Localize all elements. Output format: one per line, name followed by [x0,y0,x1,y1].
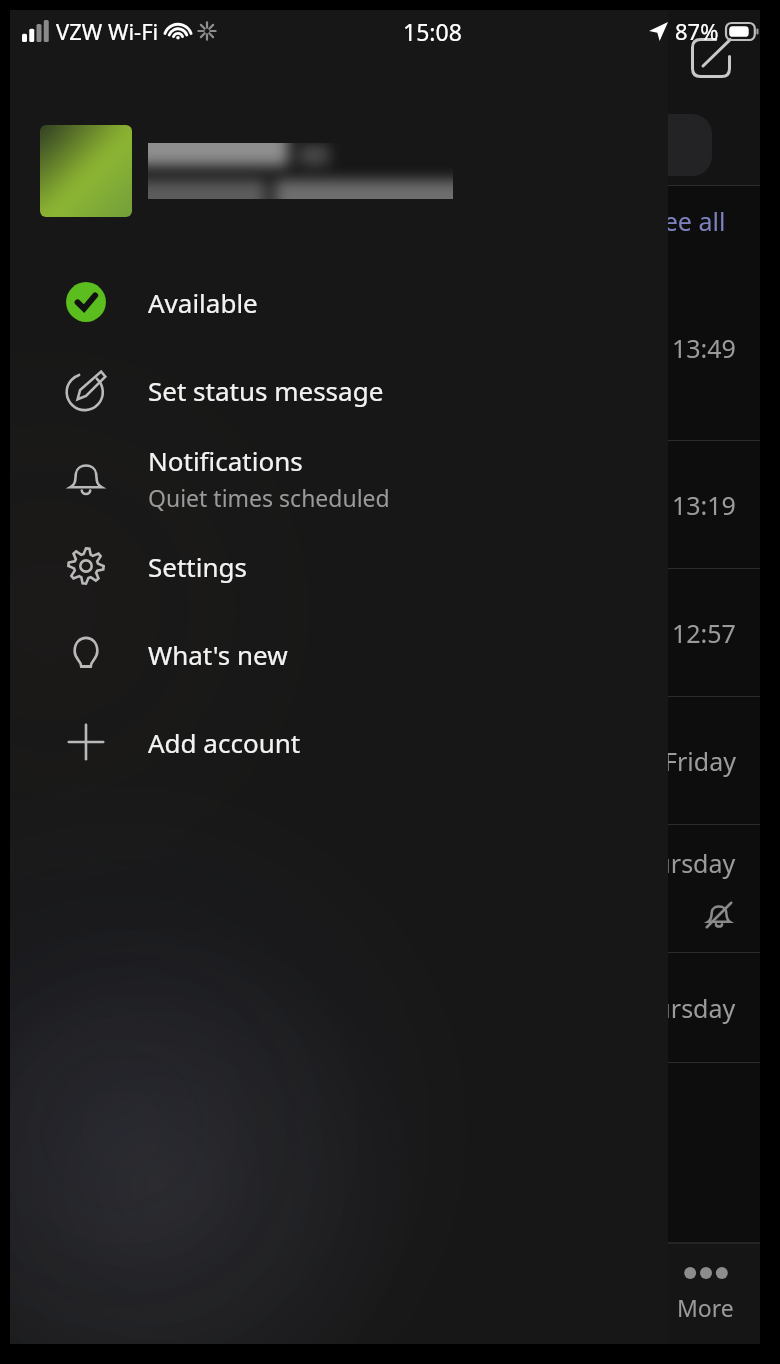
button[interactable]: Set status message [10,346,668,434]
staticText: More [677,1292,734,1323]
button[interactable]: Notifications [10,434,668,522]
staticText: Friday [664,744,736,778]
staticText: 13:49 [672,331,736,365]
staticText: Add account [148,725,301,760]
staticText: Notifications [148,443,303,478]
button[interactable]: 13:49 [10,256,760,441]
button[interactable]: See all [650,204,726,238]
button[interactable]: Add account [10,698,668,786]
button[interactable]: Thursday [10,953,760,1063]
staticText: Available [148,285,258,320]
button[interactable]: Available [10,258,668,346]
button[interactable]: 13:19 [10,441,760,569]
staticText: Quiet times scheduled [148,482,390,513]
button[interactable]: Friday [10,697,760,825]
staticText: 12:57 [672,616,736,650]
staticText: Settings [148,549,247,584]
staticText: 13:19 [672,488,736,522]
staticText: VZW Wi-Fi [56,16,159,46]
button[interactable]: More [677,1266,734,1323]
staticText: Set status message [148,373,384,408]
button[interactable] [50,114,712,176]
staticText: 87% [675,16,719,46]
button[interactable]: Thursday [10,825,760,953]
staticText: Thursday [626,846,736,880]
staticText: Thursday [626,991,736,1025]
button[interactable]: 12:57 [10,569,760,697]
button[interactable]: What's new [10,610,668,698]
button[interactable] [10,120,668,222]
staticText: What's new [148,637,288,672]
staticText: See all [650,204,726,238]
staticText: 15:08 [403,16,462,47]
button[interactable]: Settings [10,522,668,610]
button[interactable]: Compose [684,31,738,85]
